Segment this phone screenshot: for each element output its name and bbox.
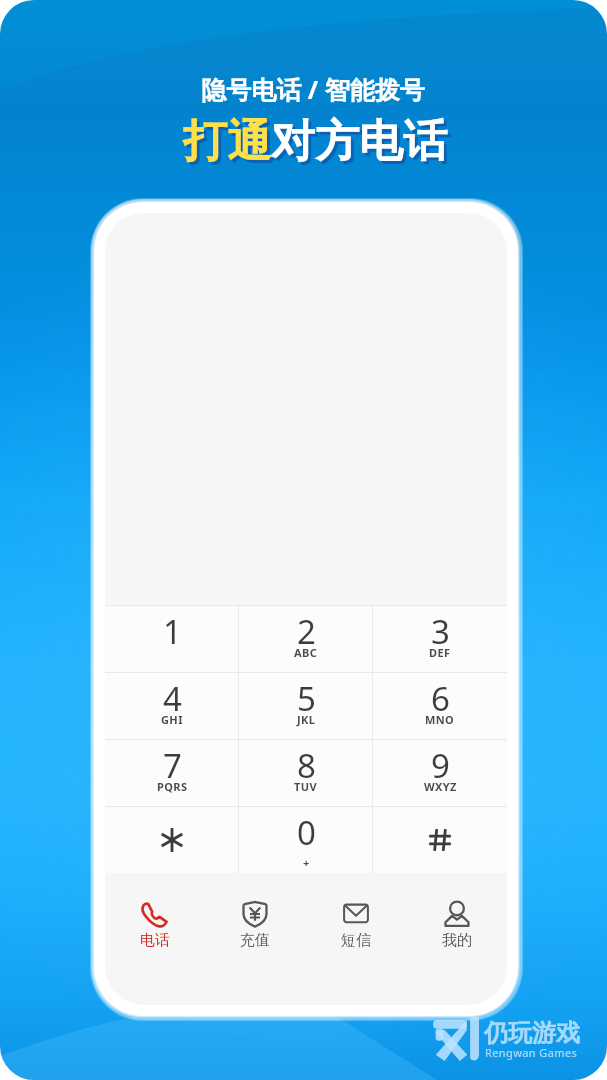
staticText: + [303, 855, 310, 870]
staticText: 3 [431, 609, 450, 654]
button[interactable]: 6 [373, 673, 507, 739]
staticText: 打通对方电话 [186, 117, 450, 172]
staticText: MNO [425, 712, 455, 727]
button[interactable]: 5 [239, 673, 373, 739]
button[interactable]: 2 [239, 606, 373, 672]
button[interactable]: 0 [239, 807, 373, 873]
staticText: DEF [429, 645, 451, 660]
staticText: 0 [297, 810, 316, 855]
staticText: 6 [431, 676, 450, 721]
button[interactable]: Profile [406, 885, 507, 950]
staticText: 1 [163, 609, 182, 654]
staticText: 短信 [341, 931, 371, 950]
other: star [154, 822, 190, 858]
staticText: 9 [431, 743, 450, 788]
staticText: 7 [163, 743, 182, 788]
staticText: 2 [297, 609, 316, 654]
staticText: 5 [297, 676, 316, 721]
button[interactable]: pound [373, 807, 507, 873]
staticText: TUV [294, 779, 318, 794]
staticText: 电话 [140, 931, 170, 950]
button[interactable]: star [105, 807, 239, 873]
staticText: 充值 [240, 931, 270, 950]
staticText: JKL [297, 712, 316, 727]
staticText: ABC [294, 645, 318, 660]
staticText: 仍玩游戏 [484, 1018, 580, 1048]
other: pound [422, 822, 458, 858]
staticText: WXYZ [424, 779, 457, 794]
staticText: PQRS [157, 779, 188, 794]
staticText: 4 [163, 676, 182, 721]
staticText: 我的 [442, 931, 472, 950]
staticText: 打通对方电话 [183, 114, 447, 169]
button[interactable]: 4 [105, 673, 239, 739]
staticText: 隐号电话 / 智能拨号 [201, 72, 425, 106]
staticText: Rengwan Games [485, 1045, 578, 1060]
button[interactable]: Recharge [205, 885, 305, 950]
button[interactable]: 1 [105, 606, 239, 672]
staticText: GHI [161, 712, 183, 727]
button[interactable]: Phone [105, 885, 205, 950]
button[interactable]: 9 [373, 740, 507, 806]
button[interactable]: 3 [373, 606, 507, 672]
button[interactable]: Messages [305, 885, 406, 950]
button[interactable]: 7 [105, 740, 239, 806]
button[interactable]: 8 [239, 740, 373, 806]
staticText: 8 [297, 743, 316, 788]
